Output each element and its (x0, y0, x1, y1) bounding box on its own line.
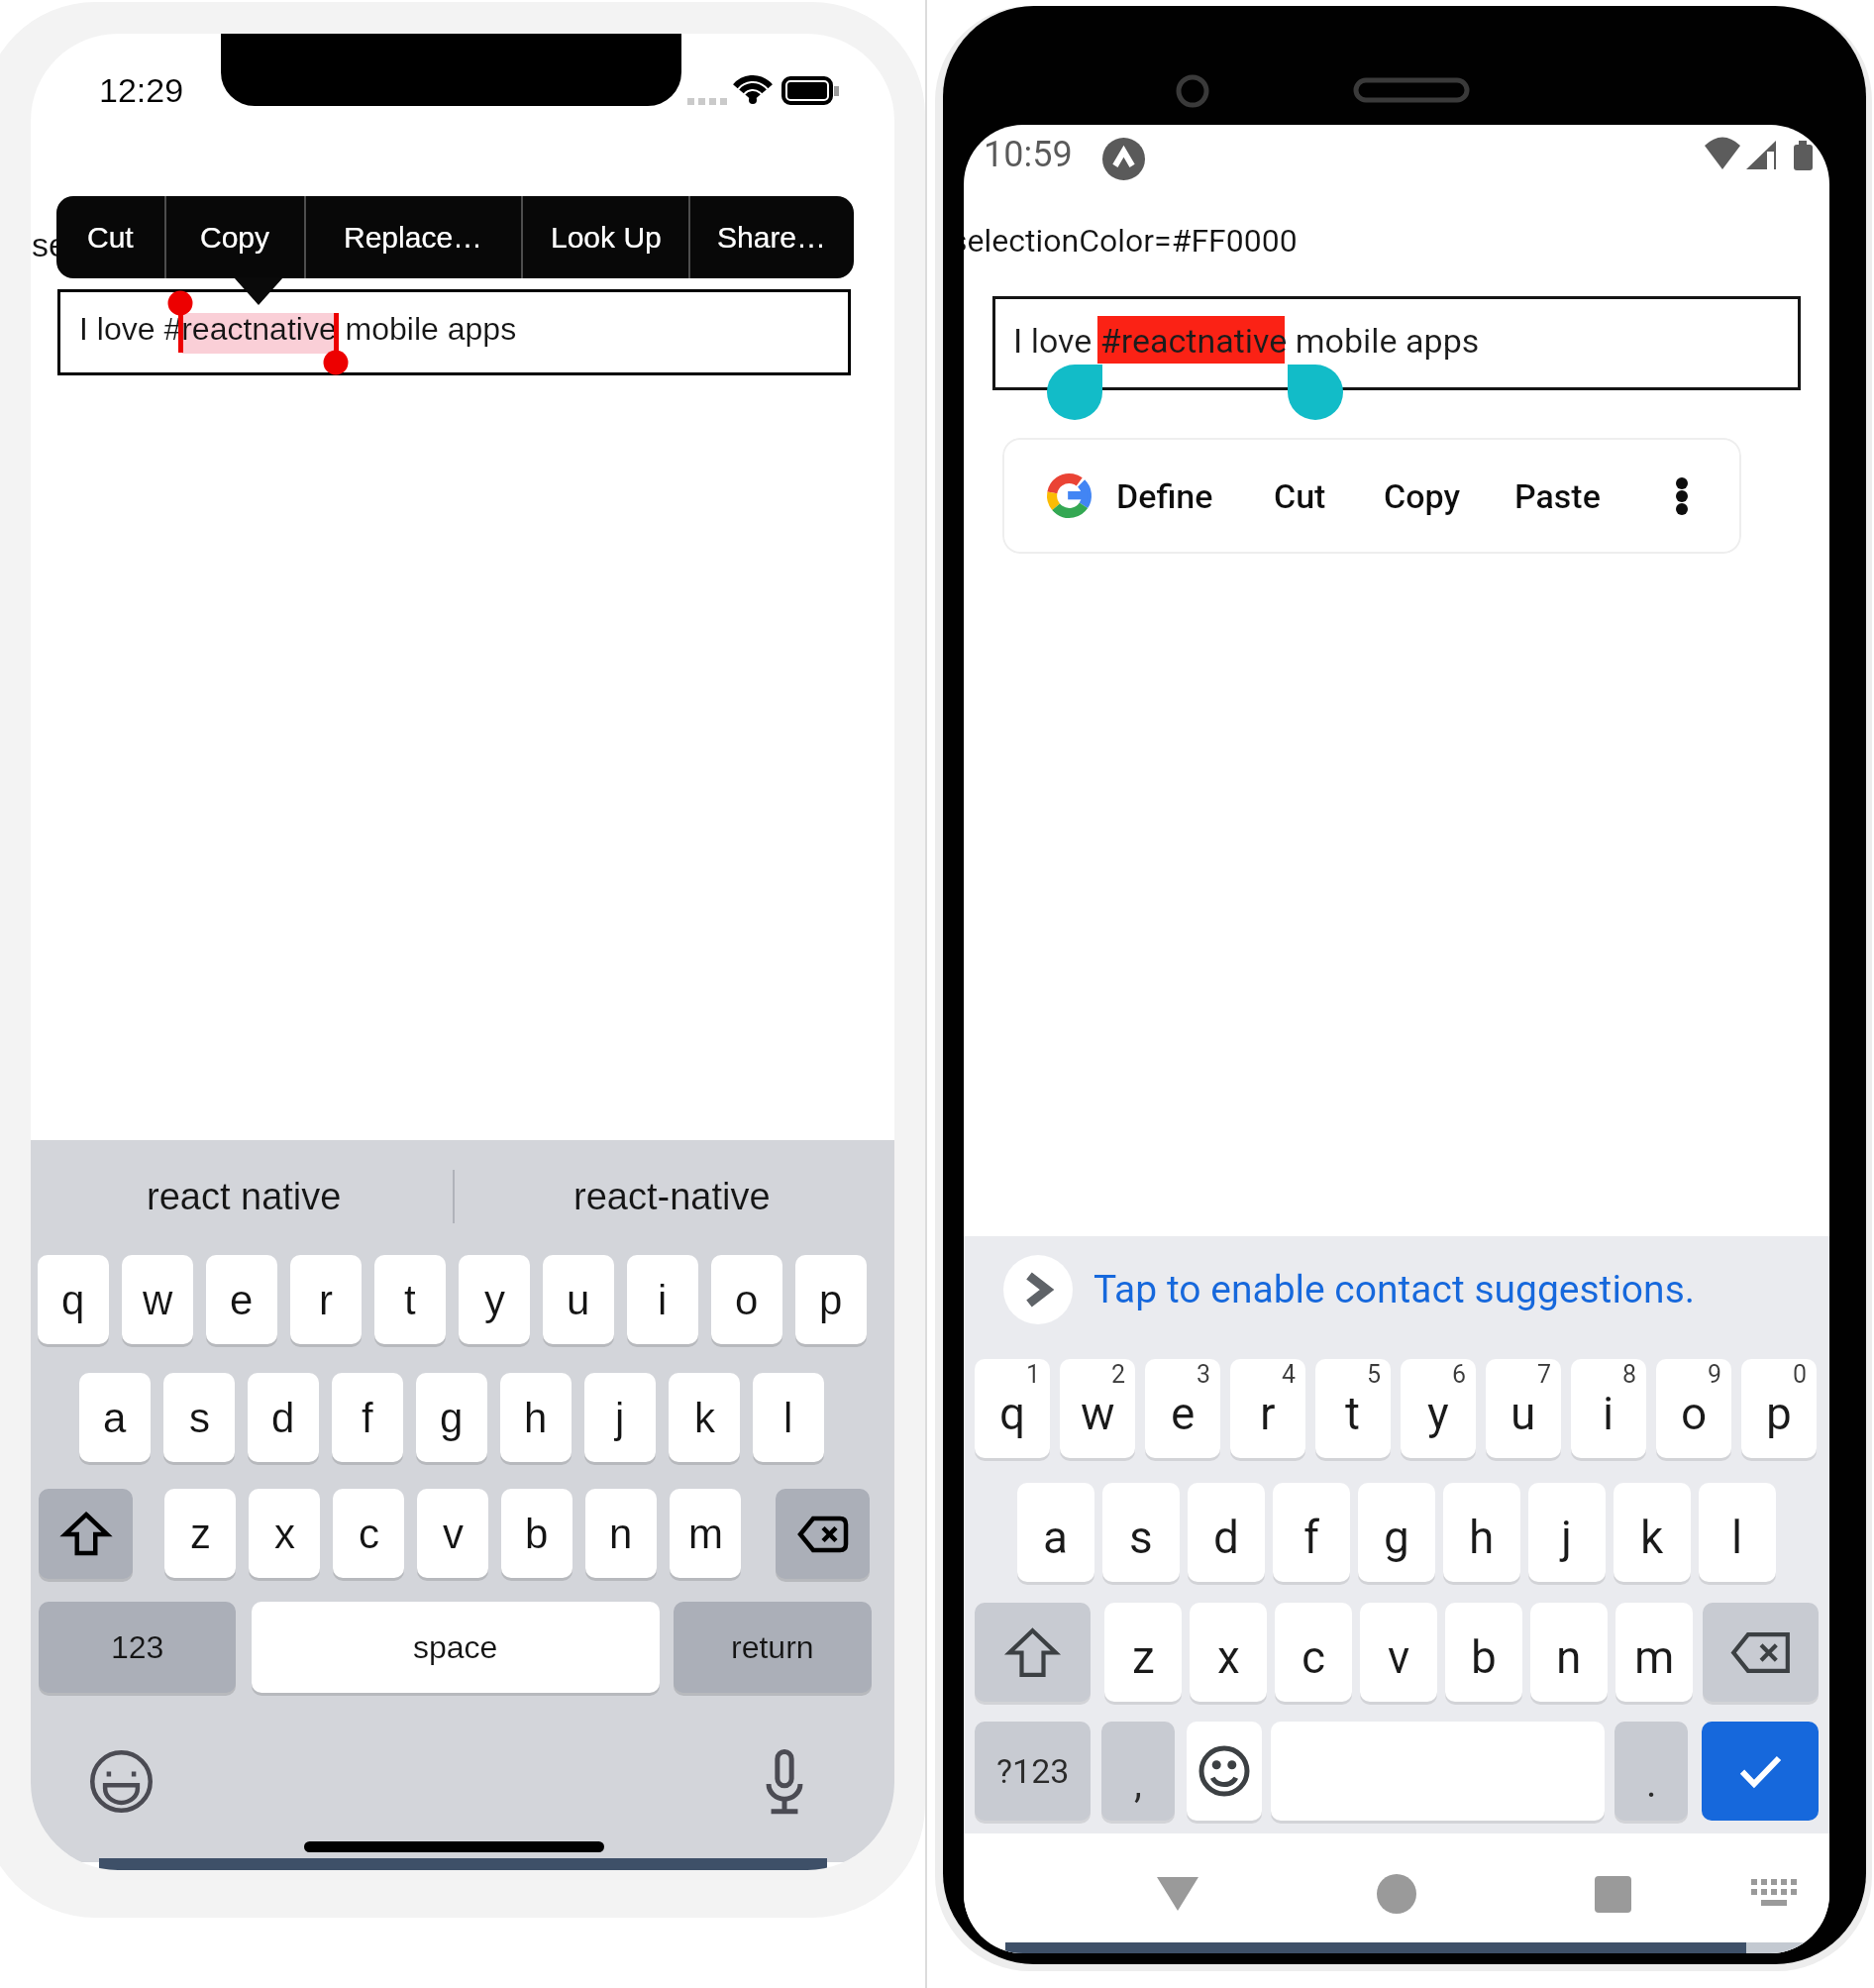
button[interactable]: l (1699, 1483, 1776, 1582)
button[interactable]: u (1486, 1359, 1561, 1458)
staticText: 1 (1026, 1360, 1041, 1389)
button[interactable]: Switch keyboard (1733, 1854, 1813, 1934)
button[interactable]: f (1273, 1483, 1350, 1582)
button[interactable]: Copy (1353, 438, 1492, 554)
button[interactable]: n (585, 1489, 657, 1578)
button[interactable]: v (417, 1489, 488, 1578)
button[interactable]: e (1145, 1359, 1220, 1458)
button[interactable]: , (1101, 1722, 1175, 1821)
button[interactable]: m (670, 1489, 741, 1578)
button[interactable]: Cut (56, 196, 164, 278)
button[interactable]: z (1104, 1603, 1182, 1702)
button[interactable]: o (711, 1255, 782, 1344)
button[interactable]: p (1741, 1359, 1817, 1458)
button[interactable]: g (1358, 1483, 1435, 1582)
staticText: k (694, 1395, 715, 1441)
button[interactable]: Define (1095, 438, 1234, 554)
button[interactable]: t (374, 1255, 446, 1344)
button[interactable]: f (332, 1373, 403, 1462)
button[interactable]: g (416, 1373, 487, 1462)
button[interactable]: e (206, 1255, 277, 1344)
button[interactable]: w (1060, 1359, 1135, 1458)
button[interactable]: I love #reactnative mobile apps (992, 296, 1801, 390)
button[interactable]: Back (1138, 1854, 1217, 1934)
staticText: l (1731, 1511, 1743, 1564)
button[interactable]: z (164, 1489, 236, 1578)
button[interactable]: o (1656, 1359, 1731, 1458)
button[interactable]: a (79, 1373, 151, 1462)
button[interactable]: q (38, 1255, 109, 1344)
staticText: space (413, 1629, 498, 1665)
staticText: b (1471, 1630, 1497, 1684)
button[interactable]: Tap to enable contact suggestions. (1093, 1255, 1708, 1324)
button[interactable]: r (290, 1255, 362, 1344)
button[interactable]: Emoji (1187, 1722, 1262, 1821)
button[interactable]: u (543, 1255, 614, 1344)
button[interactable]: Share… (690, 196, 854, 278)
staticText: y (484, 1277, 505, 1323)
staticText: v (443, 1511, 464, 1557)
staticText: Copy (1384, 476, 1461, 516)
button[interactable]: w (122, 1255, 193, 1344)
button[interactable]: More options (1627, 438, 1736, 554)
staticText: d (271, 1395, 295, 1441)
button[interactable]: Done (1702, 1722, 1819, 1821)
button[interactable]: Cut (1230, 438, 1369, 554)
button[interactable]: react native (31, 1140, 453, 1252)
staticText: selectionColor=#FF0000 (964, 222, 1298, 260)
button[interactable]: m (1615, 1603, 1693, 1702)
button[interactable]: Home (1357, 1854, 1436, 1934)
button[interactable]: Replace… (306, 196, 521, 278)
button[interactable]: space (252, 1602, 660, 1693)
button[interactable]: Expand suggestions (1003, 1255, 1073, 1324)
button[interactable]: y (459, 1255, 530, 1344)
staticText: i (1603, 1387, 1614, 1440)
button[interactable]: Shift (39, 1489, 133, 1579)
button[interactable]: k (1614, 1483, 1691, 1582)
button[interactable]: b (1445, 1603, 1522, 1702)
button[interactable]: s (1102, 1483, 1180, 1582)
button[interactable]: Copy (166, 196, 304, 278)
button[interactable]: i (1571, 1359, 1646, 1458)
button[interactable]: Backspace (776, 1489, 870, 1579)
button[interactable]: v (1360, 1603, 1437, 1702)
button[interactable]: s (163, 1373, 235, 1462)
button[interactable]: Shift (975, 1603, 1091, 1702)
button[interactable]: i (627, 1255, 698, 1344)
button[interactable]: r (1230, 1359, 1305, 1458)
button[interactable]: x (249, 1489, 320, 1578)
button[interactable]: q (975, 1359, 1050, 1458)
button[interactable]: c (1275, 1603, 1352, 1702)
button[interactable]: return (674, 1602, 872, 1693)
staticText: 3 (1197, 1360, 1211, 1389)
button[interactable]: c (333, 1489, 404, 1578)
button[interactable]: l (753, 1373, 824, 1462)
button[interactable]: h (1443, 1483, 1520, 1582)
button[interactable]: j (1528, 1483, 1606, 1582)
button[interactable]: Look Up (523, 196, 688, 278)
button[interactable]: t (1315, 1359, 1391, 1458)
button[interactable]: Paste (1488, 438, 1626, 554)
button[interactable]: Backspace (1703, 1603, 1819, 1702)
button[interactable]: y (1401, 1359, 1476, 1458)
button[interactable]: ?123 (975, 1722, 1091, 1821)
button[interactable]: a (1017, 1483, 1094, 1582)
button[interactable]: react-native (455, 1140, 894, 1252)
button[interactable]: I love #reactnative mobile apps (57, 289, 851, 375)
button[interactable]: Recent apps (1573, 1854, 1652, 1934)
button[interactable]: b (501, 1489, 573, 1578)
button[interactable]: p (795, 1255, 867, 1344)
button[interactable]: j (584, 1373, 656, 1462)
button[interactable]: k (669, 1373, 740, 1462)
staticText: ?123 (996, 1751, 1070, 1791)
button[interactable]: d (248, 1373, 319, 1462)
staticText: s (1129, 1511, 1153, 1564)
button[interactable]: 123 (39, 1602, 236, 1693)
button[interactable]: n (1530, 1603, 1608, 1702)
button[interactable]: x (1190, 1603, 1267, 1702)
button[interactable]: h (500, 1373, 572, 1462)
staticText: I love #reactnative mobile apps (1013, 321, 1480, 361)
button[interactable]: . (1614, 1722, 1688, 1821)
button[interactable]: d (1188, 1483, 1265, 1582)
